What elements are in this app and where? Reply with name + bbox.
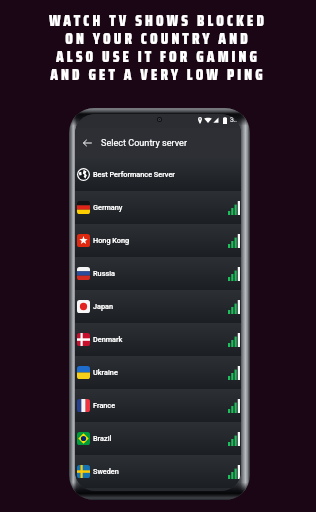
button[interactable]: Denmark xyxy=(75,323,241,356)
button[interactable]: Back xyxy=(76,128,98,158)
button[interactable]: France xyxy=(75,389,241,422)
staticText: Select Country server xyxy=(101,138,188,149)
button[interactable]: Ukraine xyxy=(75,356,241,389)
staticText: WATCH TV SHOWS BLOCKED ON YOUR COUNTRY A… xyxy=(49,9,267,86)
button[interactable]: Russia xyxy=(75,257,241,290)
staticText: France xyxy=(93,401,116,410)
button[interactable]: Germany xyxy=(75,191,241,224)
button[interactable]: Best Performance Server xyxy=(75,158,241,191)
staticText: Ukraine xyxy=(93,368,118,377)
button[interactable]: Brazil xyxy=(75,422,241,455)
staticText: Sweden xyxy=(93,467,119,476)
staticText: Denmark xyxy=(93,335,123,344)
button[interactable]: Japan xyxy=(75,290,241,323)
staticText: Russia xyxy=(93,269,115,278)
staticText: Japan xyxy=(93,302,114,311)
staticText: Hong Kong xyxy=(93,236,130,245)
button[interactable]: Sweden xyxy=(75,455,241,488)
staticText: Best Performance Server xyxy=(93,170,175,179)
staticText: Germany xyxy=(93,203,123,212)
staticText: 3:33 xyxy=(230,116,241,124)
button[interactable]: Hong Kong xyxy=(75,224,241,257)
staticText: Brazil xyxy=(93,434,112,443)
